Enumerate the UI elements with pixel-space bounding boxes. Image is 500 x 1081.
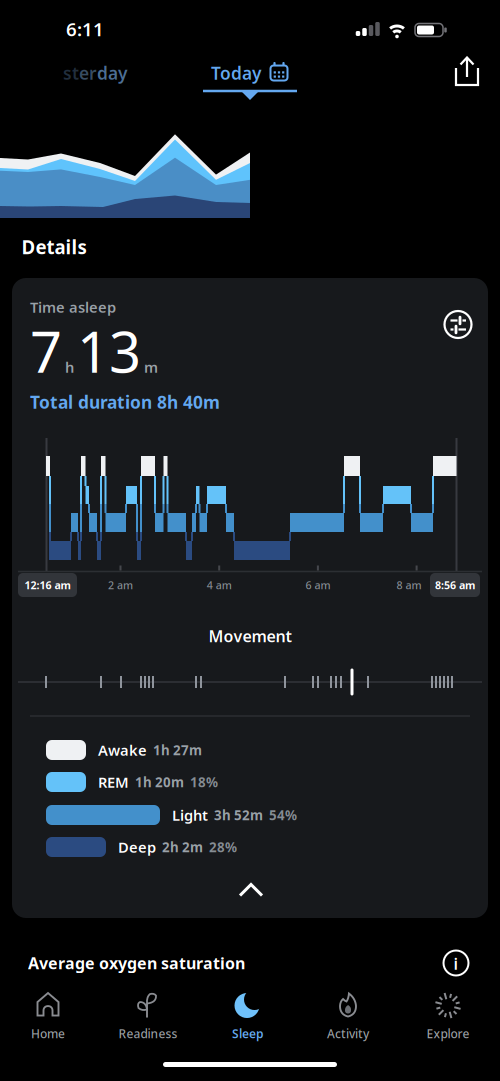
staticText: h: [65, 357, 74, 377]
button[interactable]: i: [434, 941, 478, 985]
staticText: 18%: [190, 773, 218, 791]
staticText: Awake: [98, 740, 147, 760]
staticText: 1h 27m: [153, 741, 202, 759]
staticText: Light: [172, 805, 208, 825]
button[interactable]: Readiness: [100, 988, 196, 1044]
staticText: Explore: [426, 1025, 469, 1041]
staticText: 28%: [209, 838, 237, 856]
staticText: Time asleep: [30, 297, 116, 317]
button[interactable]: Explore: [400, 988, 496, 1044]
staticText: 3h 52m: [214, 806, 263, 824]
staticText: 1h 20m: [135, 773, 184, 791]
button[interactable]: [436, 302, 480, 346]
staticText: Details: [21, 235, 86, 259]
staticText: 2h 2m: [162, 838, 203, 856]
button[interactable]: [229, 875, 273, 905]
staticText: Total duration 8h 40m: [30, 390, 220, 413]
button[interactable]: st: [63, 61, 127, 84]
staticText: 6:11: [66, 17, 104, 41]
staticText: 2 am: [108, 578, 133, 592]
staticText: Today: [211, 61, 261, 84]
staticText: 54%: [269, 806, 297, 824]
button[interactable]: Home: [0, 988, 96, 1044]
staticText: Movement: [208, 625, 291, 647]
staticText: Activity: [327, 1025, 369, 1041]
button[interactable]: [445, 50, 489, 94]
staticText: i: [453, 953, 458, 974]
staticText: st: [63, 61, 79, 84]
staticText: Readiness: [118, 1025, 177, 1041]
staticText: 13: [77, 314, 141, 388]
staticText: Deep: [118, 837, 156, 857]
staticText: Sleep: [232, 1025, 264, 1041]
staticText: 7: [30, 314, 62, 388]
staticText: 6 am: [305, 578, 330, 592]
button[interactable]: Today: [211, 61, 289, 84]
staticText: m: [144, 357, 158, 377]
staticText: Average oxygen saturation: [28, 952, 245, 974]
staticText: REM: [98, 772, 129, 792]
staticText: er: [79, 61, 97, 84]
staticText: 12:16 am: [24, 578, 70, 592]
button[interactable]: Activity: [300, 988, 396, 1044]
button[interactable]: Sleep: [200, 988, 296, 1044]
staticText: Home: [31, 1025, 65, 1041]
staticText: 8 am: [396, 578, 421, 592]
staticText: 4 am: [207, 578, 232, 592]
staticText: 8:56 am: [435, 578, 475, 592]
staticText: day: [97, 61, 127, 84]
